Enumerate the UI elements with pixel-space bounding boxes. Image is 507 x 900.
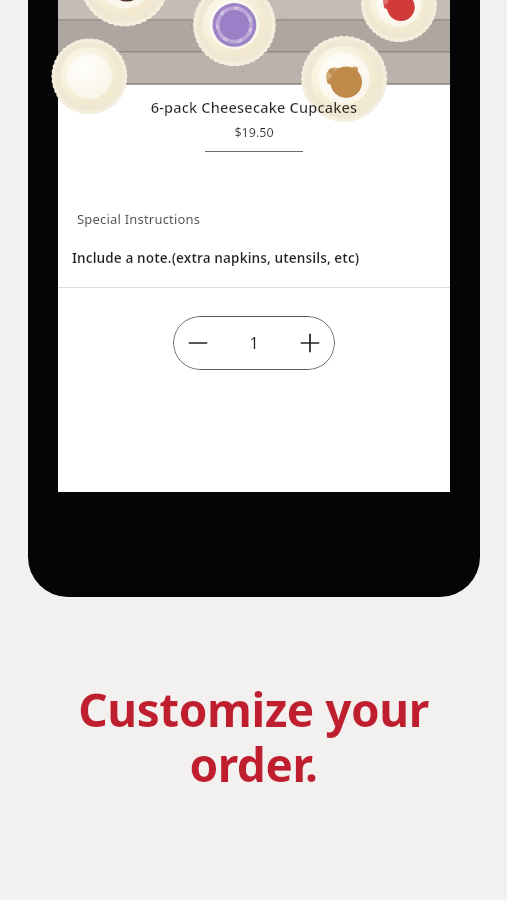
button[interactable]: Decrease quantity	[173, 316, 223, 370]
button[interactable]: Increase quantity	[285, 316, 335, 370]
staticText: Special Instructions	[77, 210, 201, 228]
staticText: 1	[249, 332, 259, 354]
staticText: Customize your order.	[16, 678, 491, 796]
staticText: 6-pack Cheesecake Cupcakes	[58, 97, 450, 117]
staticText: $19.50	[58, 124, 450, 141]
button[interactable]: Include a note.(extra napkins, utensils,…	[58, 249, 450, 267]
